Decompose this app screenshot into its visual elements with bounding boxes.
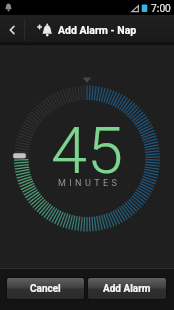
staticText: Add Alarm - Nap [58,24,137,36]
staticText: 45 [51,113,124,189]
staticText: Cancel [30,283,61,295]
staticText: 7:00 [151,1,171,15]
button[interactable]: Add Alarm [88,278,166,299]
button[interactable]: Cancel [7,278,84,299]
button[interactable]: Add Alarm - Nap [25,15,174,45]
staticText: Add Alarm [103,283,151,295]
button[interactable]: Navigate up [0,15,24,45]
staticText: MINUTES [58,178,121,189]
